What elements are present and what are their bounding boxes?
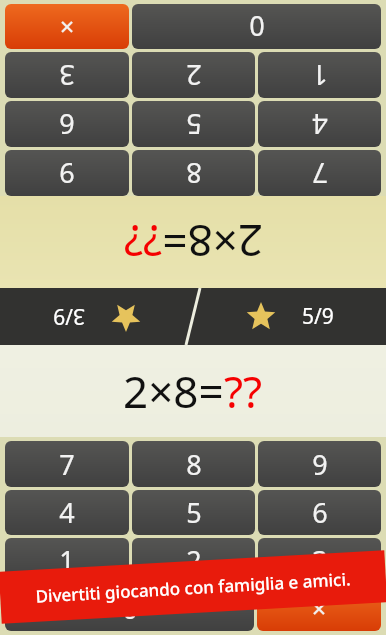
staticText: 7 bbox=[59, 446, 75, 483]
staticText: 0 bbox=[122, 590, 138, 627]
button[interactable]: 7 bbox=[5, 441, 129, 487]
button[interactable]: 5 bbox=[132, 101, 255, 147]
button[interactable]: 8 bbox=[132, 441, 255, 487]
staticText: 3 bbox=[59, 57, 75, 94]
button[interactable]: 4 bbox=[258, 101, 381, 147]
button[interactable]: 1 bbox=[5, 538, 129, 583]
staticText: 7 bbox=[312, 155, 328, 192]
staticText: 9 bbox=[312, 446, 328, 483]
staticText: 6 bbox=[59, 106, 75, 143]
button[interactable]: Advertisement bbox=[0, 550, 386, 624]
button[interactable]: 0 bbox=[132, 4, 381, 49]
staticText: ?? bbox=[224, 361, 263, 421]
staticText: 6 bbox=[312, 494, 328, 531]
staticText: ✕ bbox=[59, 16, 75, 38]
staticText: 8 bbox=[186, 155, 202, 192]
button[interactable]: 7 bbox=[258, 150, 381, 196]
button[interactable]: 3 bbox=[258, 538, 381, 583]
staticText: 1 bbox=[59, 542, 75, 579]
staticText: 5/9 bbox=[302, 302, 334, 331]
staticText: ?? bbox=[123, 212, 162, 272]
staticText: 9 bbox=[59, 155, 75, 192]
button[interactable]: 8 bbox=[132, 150, 255, 196]
button[interactable]: 1 bbox=[258, 52, 381, 98]
button[interactable]: 4 bbox=[5, 490, 129, 535]
button[interactable]: 9 bbox=[5, 150, 129, 196]
staticText: 3/9 bbox=[53, 302, 85, 331]
staticText: 3 bbox=[312, 542, 328, 579]
staticText: 2 bbox=[186, 542, 202, 579]
button[interactable]: 6 bbox=[5, 101, 129, 147]
staticText: 2 bbox=[186, 57, 202, 94]
staticText: 2×8= bbox=[162, 212, 263, 272]
button[interactable]: 3 bbox=[5, 52, 129, 98]
button[interactable]: 0 bbox=[5, 586, 254, 631]
staticText: ✕ bbox=[311, 598, 327, 620]
staticText: 5 bbox=[186, 494, 202, 531]
staticText: 4 bbox=[59, 494, 75, 531]
staticText: 5 bbox=[186, 106, 202, 143]
button[interactable]: 9 bbox=[258, 441, 381, 487]
staticText: 1 bbox=[312, 57, 328, 94]
staticText: 8 bbox=[186, 446, 202, 483]
staticText: 4 bbox=[312, 106, 328, 143]
button[interactable]: 2 bbox=[132, 52, 255, 98]
button[interactable]: 2 bbox=[132, 538, 255, 583]
button[interactable]: ✕ bbox=[5, 4, 129, 49]
button[interactable]: 6 bbox=[258, 490, 381, 535]
staticText: 0 bbox=[249, 8, 265, 45]
staticText: Divertiti giocando con famiglia e amici. bbox=[35, 567, 351, 608]
button[interactable]: 5 bbox=[132, 490, 255, 535]
button[interactable]: ✕ bbox=[257, 586, 381, 631]
staticText: 2×8= bbox=[123, 361, 224, 421]
